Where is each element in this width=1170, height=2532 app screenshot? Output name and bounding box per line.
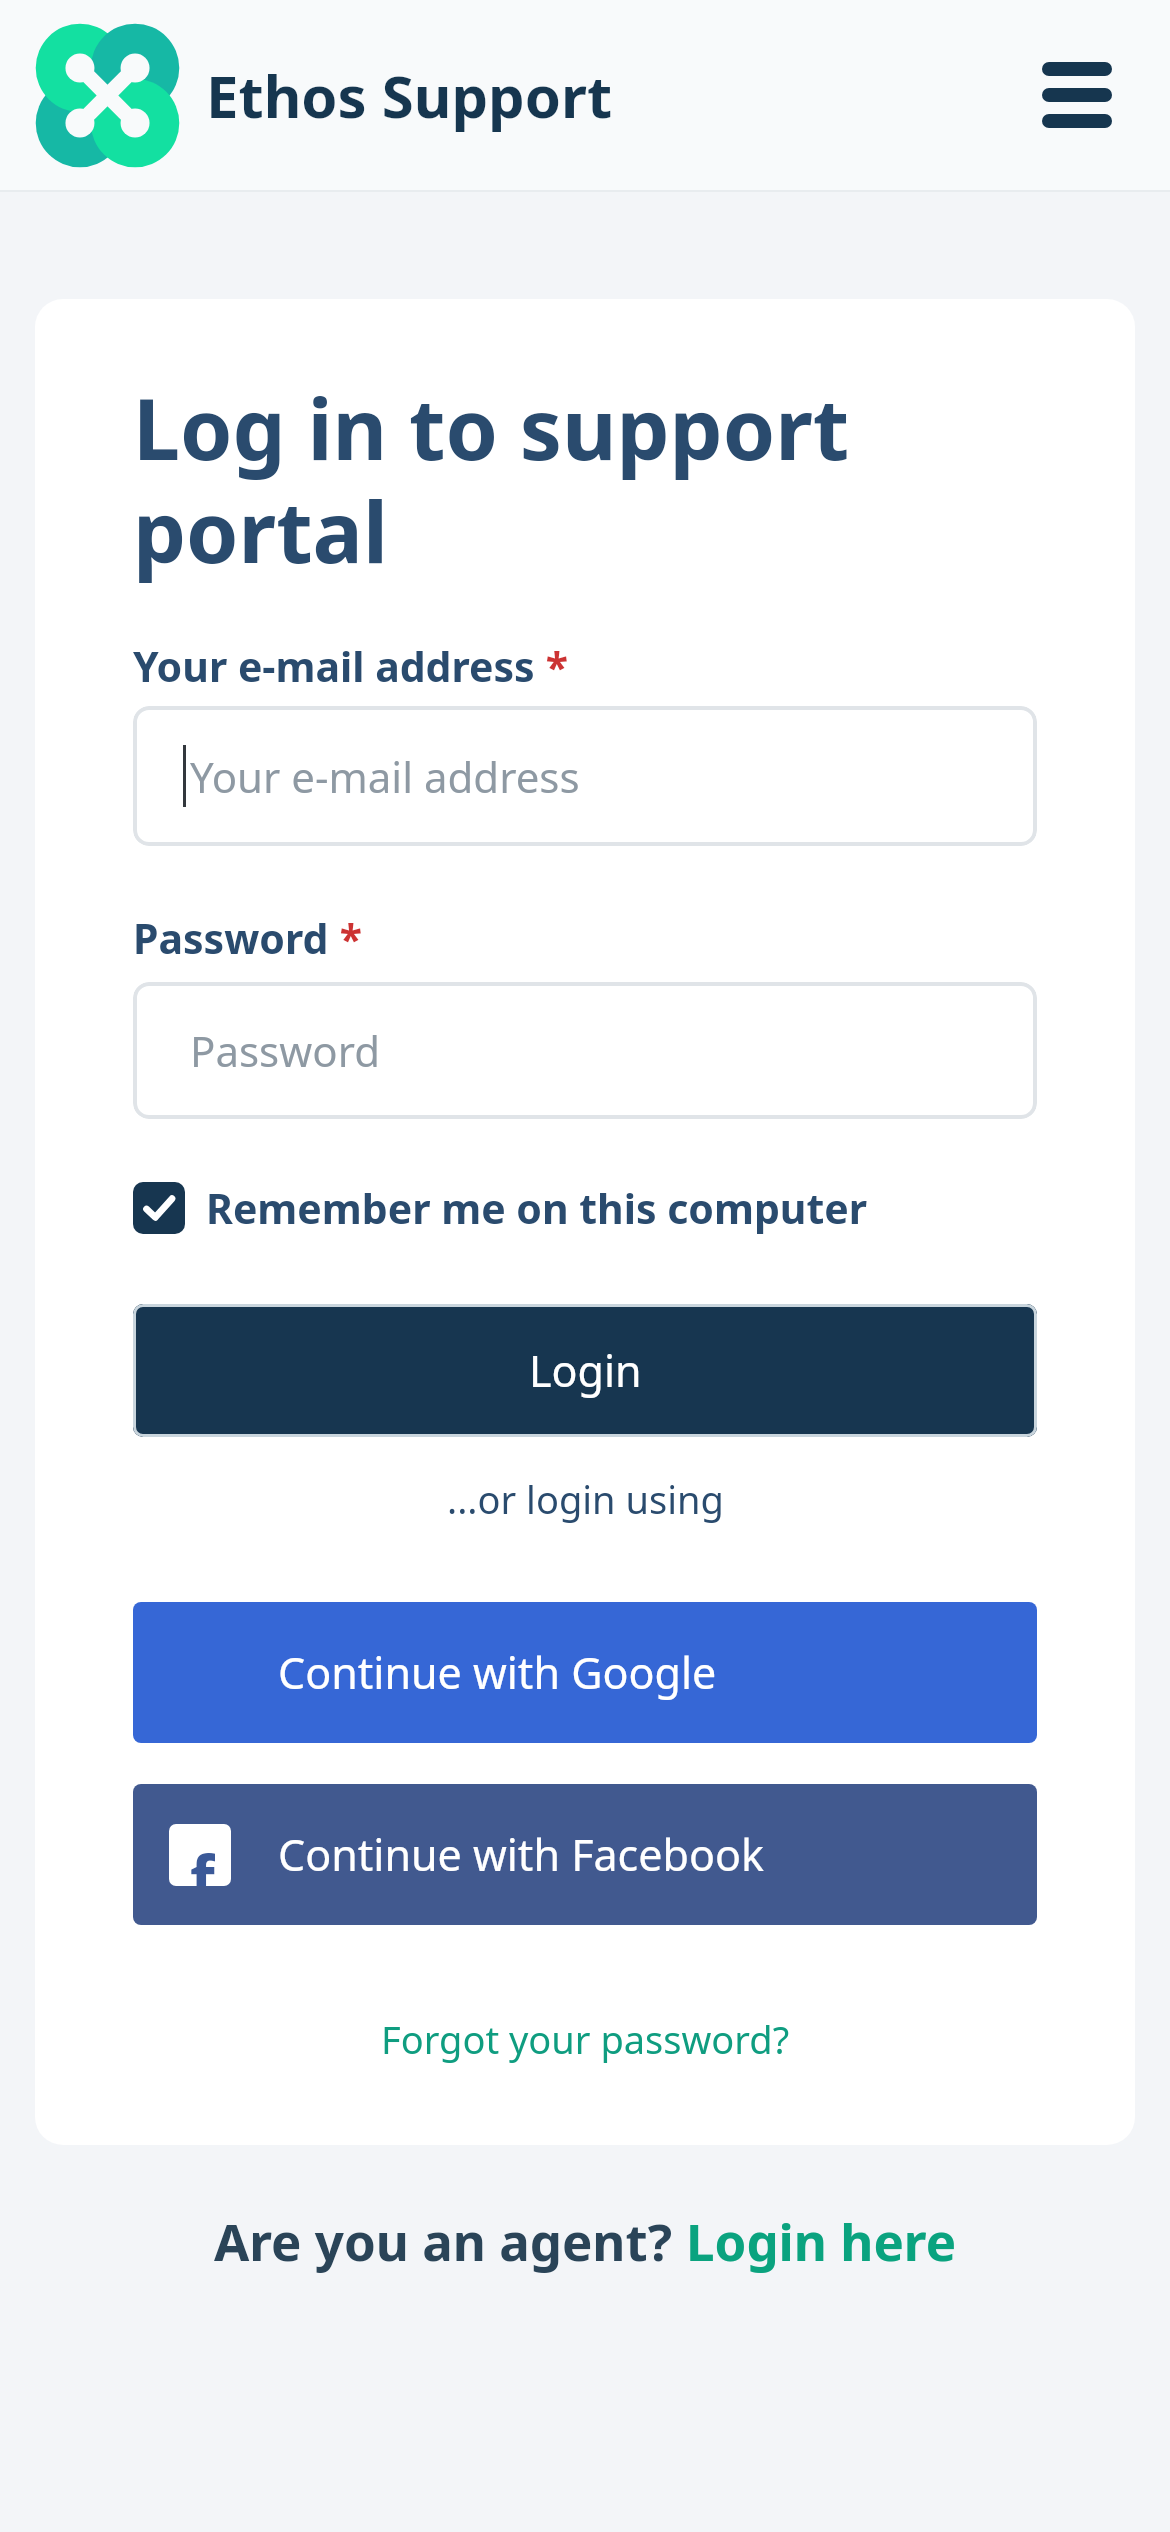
staticText: Remember me on this computer bbox=[206, 1180, 868, 1236]
button[interactable]: Are you an agent? bbox=[0, 2206, 1170, 2275]
staticText: ...or login using bbox=[447, 1473, 724, 1525]
button[interactable]: Continue with Google bbox=[133, 1602, 1037, 1743]
button[interactable]: Login bbox=[133, 1304, 1037, 1437]
staticText: Log in to support portal bbox=[133, 370, 850, 587]
button[interactable]: Your e-mail address bbox=[133, 706, 1037, 846]
staticText: Ethos Support bbox=[206, 56, 613, 135]
staticText: Password bbox=[190, 1022, 380, 1079]
button[interactable] bbox=[1042, 62, 1112, 128]
staticText: f bbox=[190, 1834, 215, 1886]
staticText: * bbox=[535, 638, 568, 694]
staticText: * bbox=[329, 910, 362, 966]
button[interactable]: Forgot your password? bbox=[133, 2013, 1037, 2065]
button[interactable]: Password bbox=[133, 982, 1037, 1119]
staticText: Login bbox=[529, 1341, 642, 1400]
staticText: Are you an agent? bbox=[214, 2206, 686, 2275]
staticText: Your e-mail address bbox=[133, 638, 535, 694]
staticText: Password bbox=[133, 910, 329, 966]
staticText: Continue with Google bbox=[278, 1643, 717, 1702]
staticText: Login here bbox=[686, 2206, 957, 2275]
staticText: Your e-mail address bbox=[190, 748, 580, 805]
staticText: Continue with Facebook bbox=[278, 1825, 764, 1884]
staticText: Forgot your password? bbox=[381, 2013, 790, 2065]
button[interactable]: Remember me on this computer bbox=[133, 1180, 868, 1236]
button[interactable]: f bbox=[133, 1784, 1037, 1925]
